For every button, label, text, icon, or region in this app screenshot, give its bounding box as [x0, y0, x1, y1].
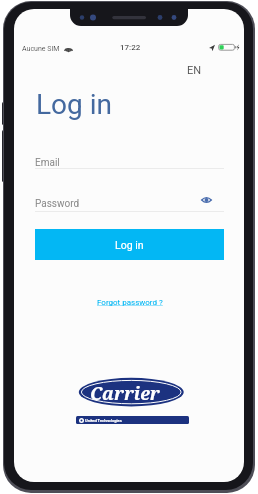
staticText: Aucune SIM	[22, 45, 60, 53]
button[interactable]: Forgot password ?	[90, 294, 170, 310]
staticText: Log in	[36, 88, 112, 121]
staticText: Email	[35, 157, 60, 169]
staticText: Forgot password ?	[97, 298, 163, 307]
staticText: Log in	[115, 239, 144, 251]
staticText: United Technologies	[85, 418, 122, 423]
button[interactable]: EN	[177, 60, 211, 80]
staticText: 17:22	[120, 43, 141, 52]
button[interactable]: Show password	[195, 189, 217, 211]
staticText: Carrier	[90, 381, 160, 406]
staticText: Password	[35, 198, 80, 210]
button[interactable]: Log in	[35, 229, 224, 260]
staticText: EN	[187, 64, 202, 77]
